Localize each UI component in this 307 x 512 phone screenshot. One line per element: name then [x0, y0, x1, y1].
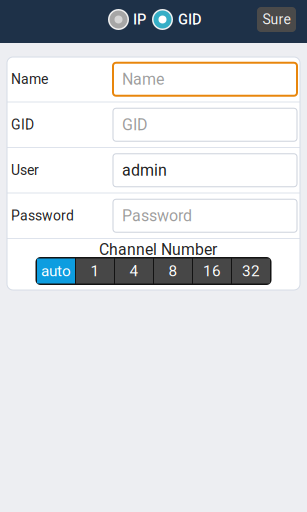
staticText: User [11, 162, 39, 178]
staticText: Password [11, 207, 74, 224]
staticText: 1 [90, 262, 99, 280]
button[interactable]: 32 [232, 258, 270, 283]
button[interactable]: auto [37, 258, 75, 283]
staticText: 4 [129, 262, 138, 280]
staticText: 32 [242, 262, 260, 280]
button[interactable]: IP [108, 5, 146, 34]
staticText: admin [122, 161, 167, 180]
button[interactable]: Sure [257, 7, 296, 32]
staticText: Name [122, 70, 164, 89]
staticText: Sure [262, 11, 290, 28]
staticText: auto [41, 262, 71, 280]
staticText: 8 [168, 262, 177, 280]
button[interactable]: 8 [154, 258, 192, 283]
staticText: 16 [203, 262, 221, 280]
staticText: Name [11, 71, 48, 87]
button[interactable]: 16 [193, 258, 231, 283]
button[interactable]: 4 [115, 258, 153, 283]
staticText: IP [133, 11, 146, 28]
button[interactable]: 1 [76, 258, 114, 283]
button[interactable]: GID [146, 5, 202, 34]
staticText: GID [11, 116, 34, 133]
staticText: GID [122, 115, 148, 134]
staticText: Password [122, 206, 192, 225]
staticText: GID [178, 11, 202, 28]
staticText: Channel Number [99, 240, 217, 259]
